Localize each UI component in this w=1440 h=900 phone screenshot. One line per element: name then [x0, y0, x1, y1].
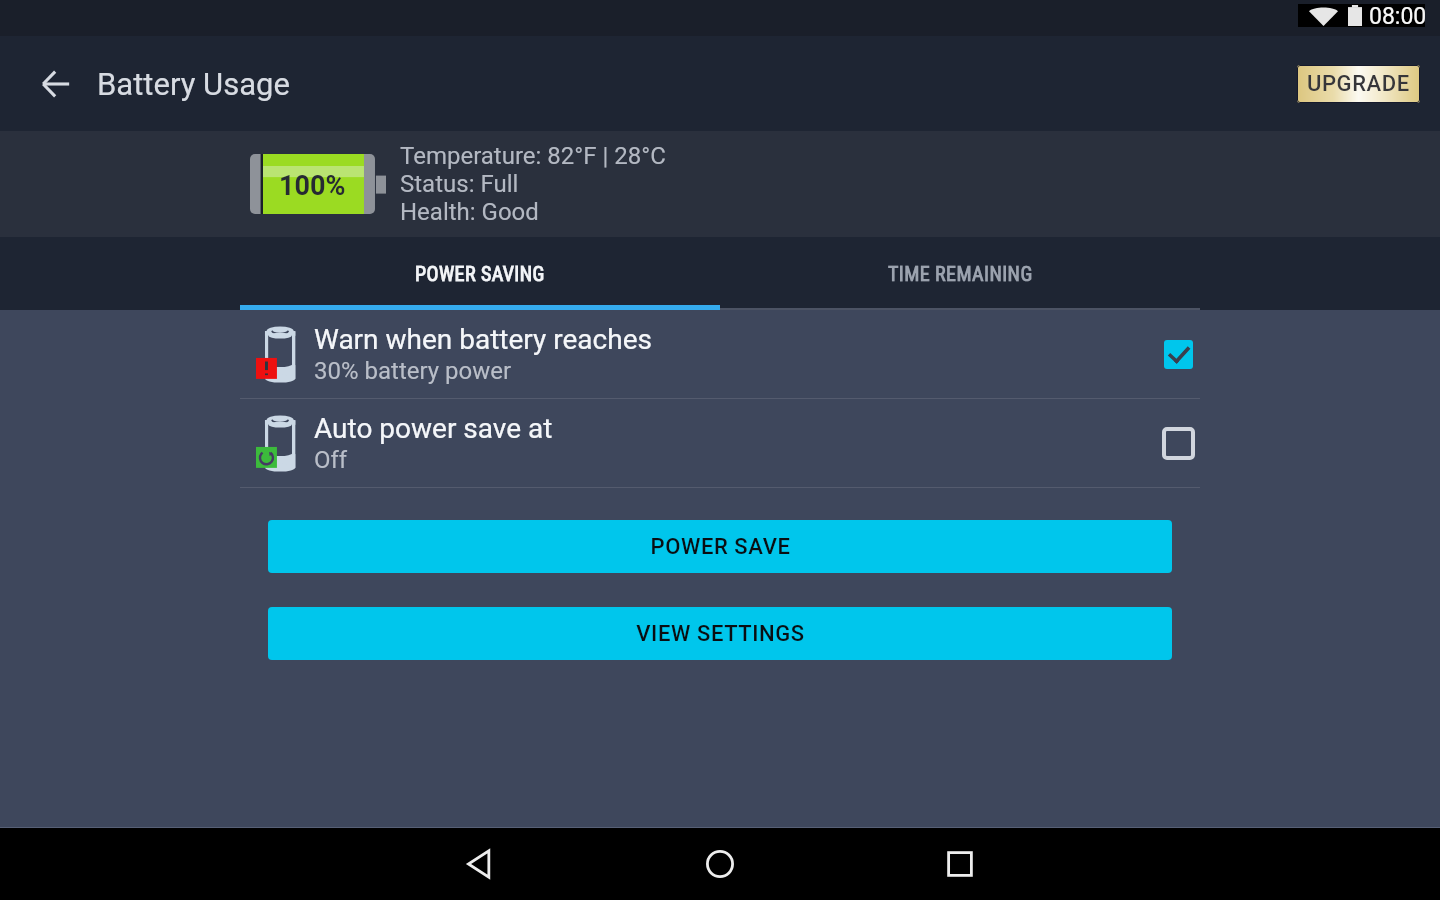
button[interactable]: Unchecked: [1156, 421, 1200, 465]
button[interactable]: Back: [34, 62, 78, 106]
button[interactable]: Warn when battery reaches: [0, 310, 1440, 398]
staticText: Health: Good: [400, 198, 539, 226]
button[interactable]: UPGRADE: [1297, 65, 1420, 103]
staticText: 100%: [279, 170, 346, 202]
staticText: Temperature: 82°F | 28°C: [400, 142, 666, 170]
staticText: Off: [314, 446, 348, 474]
staticText: POWER SAVING: [415, 262, 545, 285]
button[interactable]: TIME REMAINING: [720, 237, 1200, 310]
staticText: Warn when battery reaches: [314, 323, 652, 356]
staticText: 30% battery power: [314, 357, 512, 385]
staticText: TIME REMAINING: [888, 262, 1033, 285]
button[interactable]: VIEW SETTINGS: [268, 607, 1172, 660]
staticText: UPGRADE: [1307, 71, 1410, 97]
staticText: VIEW SETTINGS: [636, 621, 805, 647]
staticText: POWER SAVE: [650, 534, 791, 560]
button[interactable]: Recents: [840, 828, 1080, 900]
button[interactable]: Checked: [1156, 332, 1200, 376]
button[interactable]: POWER SAVE: [268, 520, 1172, 573]
button[interactable]: Back: [360, 828, 600, 900]
button[interactable]: Auto power save at: [0, 399, 1440, 487]
staticText: Auto power save at: [314, 412, 553, 445]
button[interactable]: Home: [600, 828, 840, 900]
staticText: Battery Usage: [97, 66, 290, 102]
staticText: Status: Full: [400, 170, 519, 198]
button[interactable]: POWER SAVING: [240, 237, 720, 310]
staticText: 08:00: [1369, 3, 1427, 26]
